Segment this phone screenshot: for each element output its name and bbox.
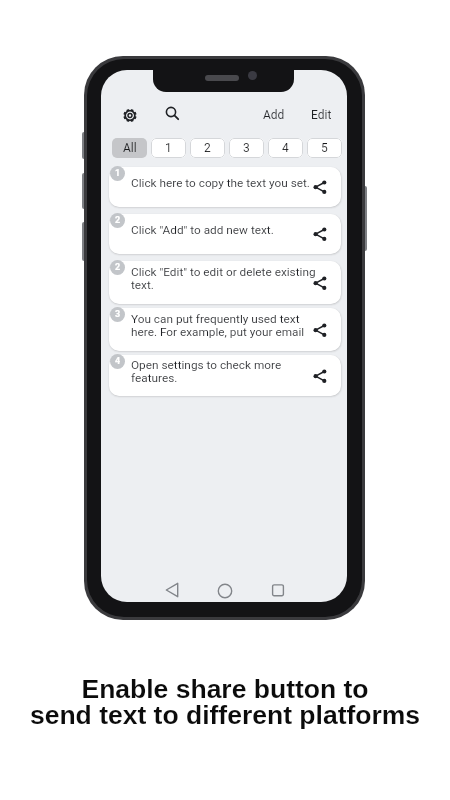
button[interactable]: Add bbox=[258, 106, 289, 123]
staticText: Open settings to check more features. bbox=[131, 358, 282, 385]
staticText: 4 bbox=[282, 141, 289, 155]
staticText: 1 bbox=[165, 141, 172, 155]
button[interactable]: All bbox=[112, 138, 147, 158]
button[interactable] bbox=[157, 580, 187, 602]
button[interactable] bbox=[263, 580, 293, 602]
button[interactable] bbox=[121, 106, 139, 124]
button[interactable] bbox=[313, 180, 327, 194]
staticText: Enable share button to send text to diff… bbox=[0, 674, 450, 729]
button[interactable] bbox=[313, 369, 327, 383]
button[interactable] bbox=[109, 261, 341, 304]
button[interactable] bbox=[210, 580, 240, 602]
button[interactable] bbox=[109, 355, 341, 396]
staticText: Click "Edit" to edit or delete existing … bbox=[131, 265, 316, 292]
staticText: 3 bbox=[243, 141, 250, 155]
button[interactable] bbox=[313, 227, 327, 241]
staticText: 3 bbox=[115, 309, 121, 320]
staticText: 2 bbox=[204, 141, 211, 155]
button[interactable] bbox=[109, 308, 341, 351]
staticText: 5 bbox=[321, 141, 328, 155]
button[interactable] bbox=[164, 105, 181, 122]
staticText: You can put frequently used text here. F… bbox=[131, 312, 305, 339]
button[interactable] bbox=[109, 214, 341, 254]
staticText: 2 bbox=[115, 262, 121, 273]
staticText: Add bbox=[263, 108, 285, 122]
button[interactable]: Edit bbox=[305, 106, 337, 123]
button[interactable] bbox=[109, 167, 341, 207]
button[interactable] bbox=[313, 323, 327, 337]
staticText: 4 bbox=[115, 356, 121, 367]
button[interactable]: 4 bbox=[268, 138, 303, 158]
staticText: Click "Add" to add new text. bbox=[131, 223, 274, 237]
staticText: All bbox=[123, 141, 137, 155]
staticText: Edit bbox=[311, 108, 332, 122]
button[interactable]: 2 bbox=[190, 138, 225, 158]
button[interactable] bbox=[313, 276, 327, 290]
staticText: Click here to copy the text you set. bbox=[131, 176, 310, 190]
button[interactable]: 1 bbox=[151, 138, 186, 158]
staticText: 2 bbox=[115, 215, 121, 226]
button[interactable]: 5 bbox=[307, 138, 342, 158]
staticText: 1 bbox=[115, 168, 121, 179]
button[interactable]: 3 bbox=[229, 138, 264, 158]
